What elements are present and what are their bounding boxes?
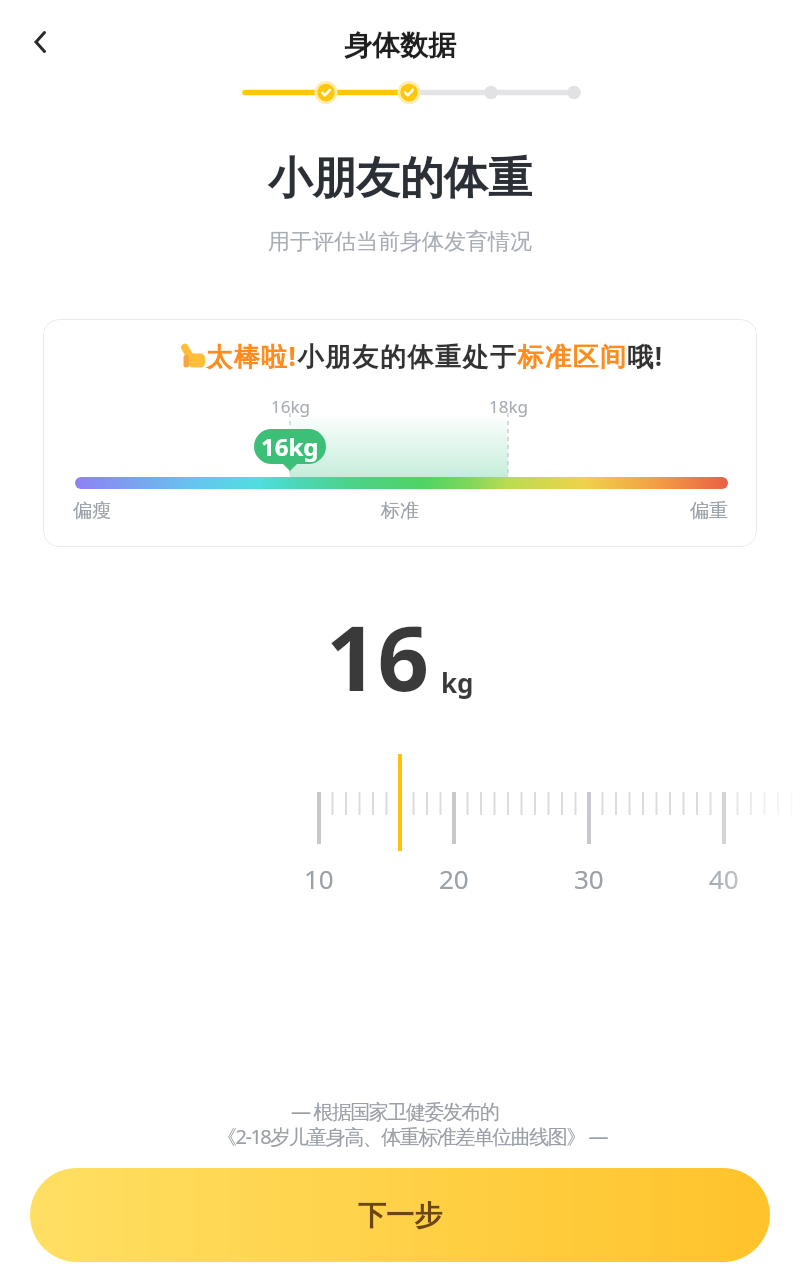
staticText: 16kg xyxy=(271,395,310,418)
staticText: 40 xyxy=(709,861,739,896)
staticText: kg xyxy=(441,665,474,700)
staticText: 用于评估当前身体发育情况 xyxy=(268,228,532,256)
staticText: 《2-18岁儿童身高、体重标准差单位曲线图》 — xyxy=(217,1123,607,1150)
staticText: 18kg xyxy=(489,395,528,418)
staticText: 16 xyxy=(326,595,429,718)
staticText: 30 xyxy=(574,861,604,896)
staticText: 身体数据 xyxy=(344,28,456,63)
staticText: 16kg xyxy=(261,430,319,463)
button[interactable]: 下一步 xyxy=(30,1168,770,1262)
staticText: 偏瘦 xyxy=(73,499,111,523)
staticText: 10 xyxy=(304,861,334,896)
staticText: 偏重 xyxy=(690,499,728,523)
button[interactable] xyxy=(20,22,60,62)
staticText: 标准 xyxy=(381,499,419,523)
staticText: 20 xyxy=(439,861,469,896)
staticText: 小朋友的体重 xyxy=(268,151,532,206)
staticText: 下一步 xyxy=(358,1198,442,1233)
staticText: 太棒啦!小朋友的体重处于标准区间哦! xyxy=(206,338,664,374)
staticText: — 根据国家卫健委发布的 xyxy=(291,1098,499,1125)
